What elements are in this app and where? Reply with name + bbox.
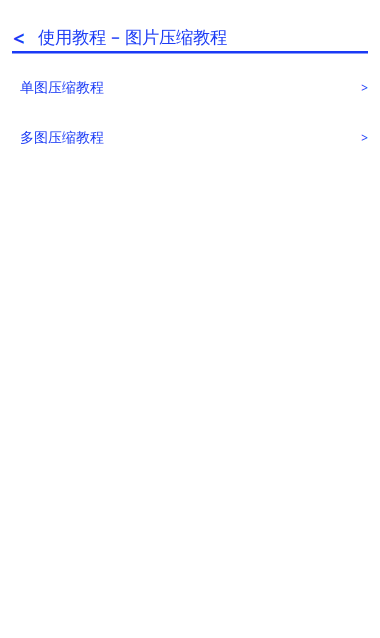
- staticText: >: [361, 129, 368, 146]
- staticText: 使用教程 – 图片压缩教程: [38, 25, 227, 49]
- staticText: >: [361, 79, 368, 96]
- staticText: <: [13, 24, 24, 52]
- staticText: 多图压缩教程: [20, 129, 104, 146]
- staticText: 单图压缩教程: [20, 79, 104, 96]
- button[interactable]: Back: [0, 26, 39, 50]
- button[interactable]: 多图压缩教程: [0, 112, 380, 162]
- button[interactable]: 单图压缩教程: [0, 62, 380, 112]
